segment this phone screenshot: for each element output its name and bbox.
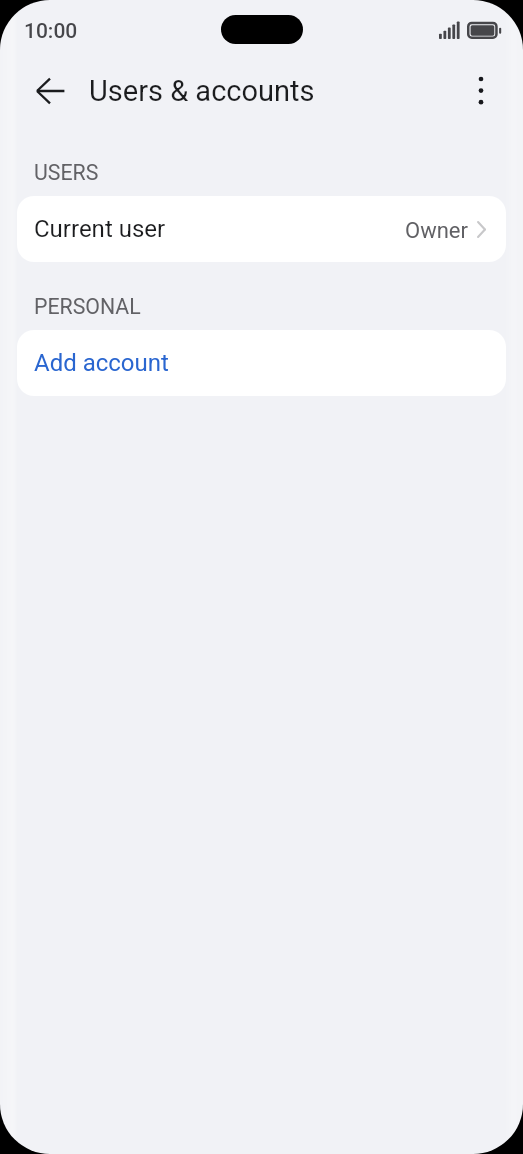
staticText: PERSONAL: [34, 294, 141, 316]
staticText: Owner: [405, 218, 468, 244]
staticText: 10:00: [24, 19, 78, 44]
staticText: Users & accounts: [89, 74, 315, 108]
button[interactable]: Back: [26, 67, 74, 115]
button[interactable]: Current user: [17, 196, 506, 262]
staticText: USERS: [34, 160, 99, 182]
button[interactable]: More options: [457, 66, 505, 114]
button[interactable]: Add account: [17, 330, 506, 396]
staticText: Current user: [34, 215, 166, 243]
staticText: Add account: [34, 349, 169, 377]
